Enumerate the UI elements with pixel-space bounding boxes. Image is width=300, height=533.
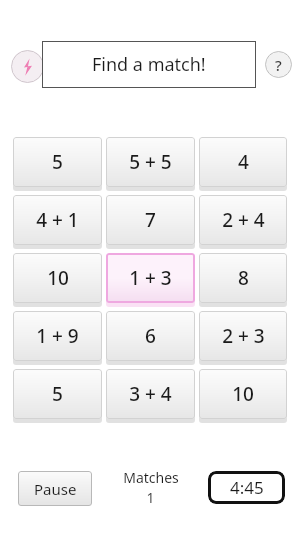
button[interactable]: 4 xyxy=(199,137,287,187)
staticText: 4:45 xyxy=(230,476,264,499)
button[interactable]: Find a match! xyxy=(42,41,256,88)
button[interactable]: 5 + 5 xyxy=(106,137,195,187)
staticText: 2 + 4 xyxy=(222,207,265,233)
button[interactable]: 2 + 4 xyxy=(199,195,287,245)
staticText: 4 xyxy=(238,149,249,175)
staticText: 1 xyxy=(146,488,155,507)
button[interactable]: 6 xyxy=(106,311,195,361)
staticText: Pause xyxy=(34,479,77,499)
staticText: 1 + 3 xyxy=(129,265,172,291)
button[interactable]: 3 + 4 xyxy=(106,369,195,419)
staticText: Find a match! xyxy=(92,52,206,77)
button[interactable]: 5 xyxy=(13,369,102,419)
staticText: 2 + 3 xyxy=(222,323,265,349)
button[interactable]: 2 + 3 xyxy=(199,311,287,361)
staticText: 5 xyxy=(52,381,63,407)
button[interactable]: 4:45 xyxy=(208,471,285,504)
staticText: 5 xyxy=(52,149,63,175)
button[interactable]: Pause xyxy=(18,471,92,506)
staticText: ? xyxy=(275,55,282,75)
button[interactable]: 5 xyxy=(13,137,102,187)
staticText: 10 xyxy=(47,265,69,291)
button[interactable]: 10 xyxy=(13,253,102,303)
staticText: Matches xyxy=(123,468,179,487)
button[interactable]: 1 + 3 xyxy=(106,253,195,303)
staticText: 10 xyxy=(232,381,254,407)
staticText: 6 xyxy=(145,323,156,349)
button[interactable]: 8 xyxy=(199,253,287,303)
button[interactable]: 7 xyxy=(106,195,195,245)
button[interactable]: Help xyxy=(265,51,292,78)
button[interactable]: 4 + 1 xyxy=(13,195,102,245)
staticText: 4 + 1 xyxy=(36,207,79,233)
staticText: 3 + 4 xyxy=(129,381,172,407)
button[interactable]: Hint xyxy=(11,50,44,83)
staticText: 7 xyxy=(145,207,156,233)
staticText: 1 + 9 xyxy=(36,323,79,349)
staticText: 5 + 5 xyxy=(129,149,172,175)
staticText: 8 xyxy=(238,265,249,291)
button[interactable]: 1 + 9 xyxy=(13,311,102,361)
button[interactable]: 10 xyxy=(199,369,287,419)
